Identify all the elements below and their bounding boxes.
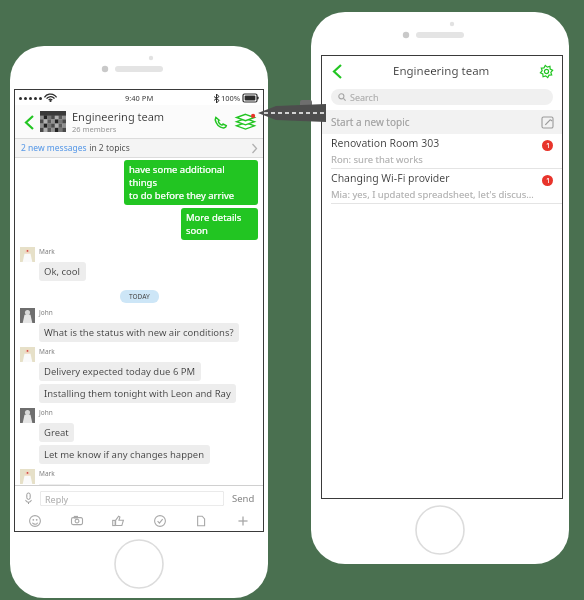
staticText: 2 new messages (21, 142, 87, 154)
staticText: John (39, 308, 53, 317)
button[interactable]: Great (39, 423, 74, 442)
staticText: in 2 topics (87, 142, 130, 154)
staticText: More details soon (186, 211, 253, 237)
button[interactable]: Camera (62, 511, 92, 531)
staticText: Engineering team (72, 109, 165, 124)
staticText: 1 (546, 141, 550, 150)
button[interactable]: Start a new topic (322, 110, 562, 134)
button[interactable]: Call (210, 111, 230, 133)
staticText: 9:40 PM (125, 93, 154, 103)
staticText: Search (350, 91, 379, 103)
staticText: Reply (45, 493, 69, 505)
staticText: Renovation Room 303 (331, 136, 440, 150)
staticText: Engineering team (393, 63, 490, 79)
button[interactable]: Search (331, 89, 553, 105)
staticText: Send (232, 492, 255, 505)
button[interactable]: Ok, cool (39, 262, 86, 281)
staticText: 100% (221, 93, 241, 103)
staticText: Delivery expected today due 6 PM (44, 365, 196, 378)
button[interactable]: Changing Wi-Fi provider (322, 169, 562, 203)
button[interactable]: Renovation Room 303 (322, 134, 562, 168)
staticText: John (39, 408, 53, 417)
button[interactable]: Like (103, 511, 133, 531)
staticText: Changing Wi-Fi provider (331, 171, 450, 185)
button[interactable]: Installing them tonight with Leon and Ra… (39, 384, 236, 403)
button[interactable]: have some additional things to do before… (124, 160, 258, 205)
staticText: Ok, cool (44, 265, 81, 278)
staticText: Great (44, 426, 69, 439)
button[interactable]: Back (329, 59, 345, 83)
button[interactable]: Let me know if any changes happen (39, 445, 210, 464)
staticText: 26 members (72, 124, 117, 134)
staticText: Let me know if any changes happen (44, 448, 205, 461)
button[interactable]: Emoji (20, 511, 50, 531)
button[interactable]: More details soon (181, 208, 258, 240)
button[interactable]: More (228, 511, 258, 531)
staticText: 1 (546, 176, 550, 185)
button[interactable]: What is the status with new air conditio… (39, 323, 239, 342)
button[interactable]: Delivery expected today due 6 PM (39, 362, 201, 381)
staticText: Start a new topic (331, 115, 410, 129)
button[interactable]: 2 new messages (15, 139, 263, 157)
button[interactable]: Task (145, 511, 175, 531)
staticText: TODAY (129, 292, 150, 301)
staticText: Ron: sure that works (331, 153, 423, 166)
staticText: Mark (39, 247, 55, 256)
staticText: Mark (39, 469, 55, 478)
button[interactable]: Send (230, 492, 257, 505)
button[interactable]: Reply (40, 491, 224, 506)
staticText: Mia: yes, I updated spreadsheet, let's d… (331, 188, 538, 201)
staticText: What is the status with new air conditio… (44, 326, 234, 339)
button[interactable]: Settings (537, 62, 555, 80)
button[interactable]: Voice message (21, 491, 35, 505)
button[interactable]: File (186, 511, 216, 531)
button[interactable]: Topics (233, 111, 257, 133)
staticText: have some additional things to do before… (129, 163, 253, 202)
staticText: Mark (39, 347, 55, 356)
staticText: Installing them tonight with Leon and Ra… (44, 387, 231, 400)
button[interactable]: Back (21, 109, 37, 135)
